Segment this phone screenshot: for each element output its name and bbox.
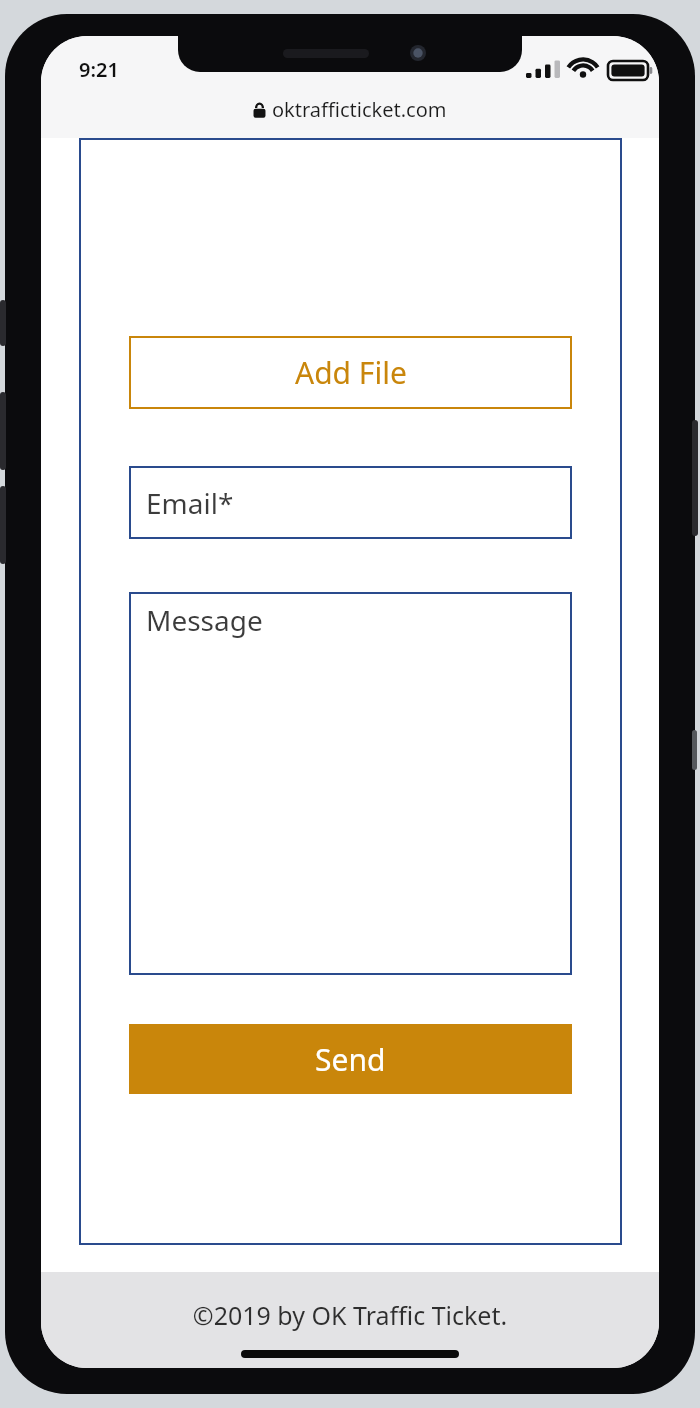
staticText: Send <box>315 1039 386 1080</box>
staticText: ©2019 by OK Traffic Ticket. <box>41 1298 659 1332</box>
button[interactable]: Message <box>129 592 572 975</box>
staticText: oktrafficticket.com <box>272 96 447 123</box>
button[interactable]: Twitter <box>328 1307 372 1351</box>
button[interactable]: Email* <box>129 466 572 539</box>
button[interactable]: Send <box>129 1024 572 1094</box>
staticText: Email* <box>146 484 234 522</box>
staticText: Add File <box>295 352 407 393</box>
staticText: 9:21 <box>79 56 119 83</box>
button[interactable]: Add File <box>129 336 572 409</box>
button[interactable]: LinkedIn <box>386 1307 430 1351</box>
staticText: Message <box>146 601 263 639</box>
button[interactable]: Facebook <box>270 1307 314 1351</box>
